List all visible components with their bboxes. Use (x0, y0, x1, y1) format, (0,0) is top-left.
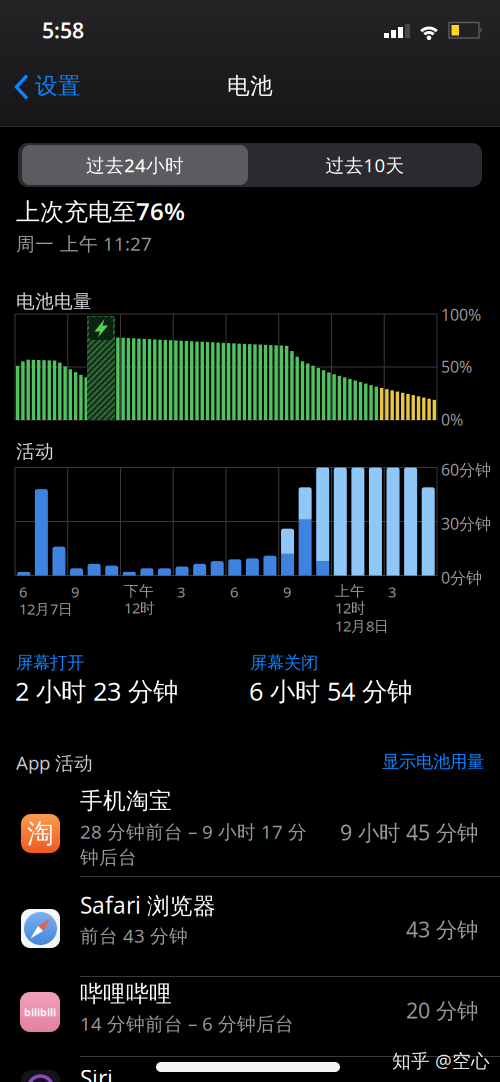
staticText: 5:58 (42, 16, 84, 44)
staticText: 0分钟 (441, 567, 482, 588)
staticText: 周一 上午 11:27 (16, 231, 152, 256)
staticText: 过去24小时 (86, 153, 184, 177)
button[interactable]: 返回设置 (0, 0, 500, 1082)
staticText: 上次充电至76% (16, 195, 185, 227)
button[interactable]: 淘 (0, 778, 500, 876)
staticText: 9 小时 45 分钟 (340, 818, 478, 846)
staticText: 显示电池用量 (382, 751, 484, 772)
staticText: bilibili (24, 1005, 56, 1019)
staticText: 12月8日 (335, 616, 389, 635)
staticText: 电池 (227, 72, 273, 100)
staticText: 3 (177, 582, 185, 601)
button[interactable]: 过去10天 (252, 145, 478, 185)
staticText: 20 分钟 (406, 996, 478, 1024)
staticText: 哔哩哔哩 (80, 980, 172, 1008)
staticText: 下午 (124, 582, 154, 600)
staticText: 设置 (35, 72, 81, 100)
button[interactable]: Safari 浏览器 (0, 877, 500, 976)
staticText: 2 小时 23 分钟 (15, 674, 178, 708)
staticText: 前台 43 分钟 (80, 923, 188, 948)
staticText: 43 分钟 (406, 915, 478, 943)
staticText: 100% (441, 304, 481, 325)
staticText: 电池电量 (16, 290, 92, 313)
staticText: 知乎 @空心 (392, 1048, 490, 1073)
staticText: 12时 (124, 598, 155, 617)
button[interactable]: bilibili (0, 977, 500, 1056)
button[interactable]: Siri (0, 1057, 500, 1082)
staticText: 50% (441, 356, 472, 377)
button[interactable]: 过去24小时 (22, 145, 248, 185)
staticText: App 活动 (16, 750, 93, 775)
staticText: 3 (388, 582, 396, 601)
staticText: 屏幕打开 (16, 652, 84, 673)
staticText: 0% (441, 409, 463, 430)
staticText: 屏幕关闭 (250, 652, 318, 673)
staticText: 12月7日 (19, 599, 73, 618)
staticText: 14 分钟前台 – 6 分钟后台 (80, 1011, 294, 1036)
staticText: Safari 浏览器 (80, 890, 216, 920)
staticText: 9 (71, 582, 79, 601)
staticText: 6 (19, 582, 27, 601)
staticText: 活动 (16, 440, 54, 463)
staticText: 过去10天 (325, 153, 404, 177)
staticText: 9 (283, 582, 291, 601)
staticText: 60分钟 (441, 459, 491, 480)
staticText: 6 小时 54 分钟 (249, 674, 412, 708)
staticText: 上午 (335, 582, 365, 600)
staticText: 12时 (335, 598, 366, 617)
staticText: 30分钟 (441, 513, 491, 534)
staticText: 手机淘宝 (80, 787, 172, 815)
button[interactable]: 显示电池用量 (284, 751, 484, 772)
staticText: 28 分钟前台 – 9 小时 17 分 (80, 819, 307, 844)
staticText: 淘 (27, 817, 54, 850)
staticText: 6 (230, 582, 238, 601)
staticText: 钟后台 (80, 846, 137, 869)
staticText: Siri (80, 1063, 113, 1082)
